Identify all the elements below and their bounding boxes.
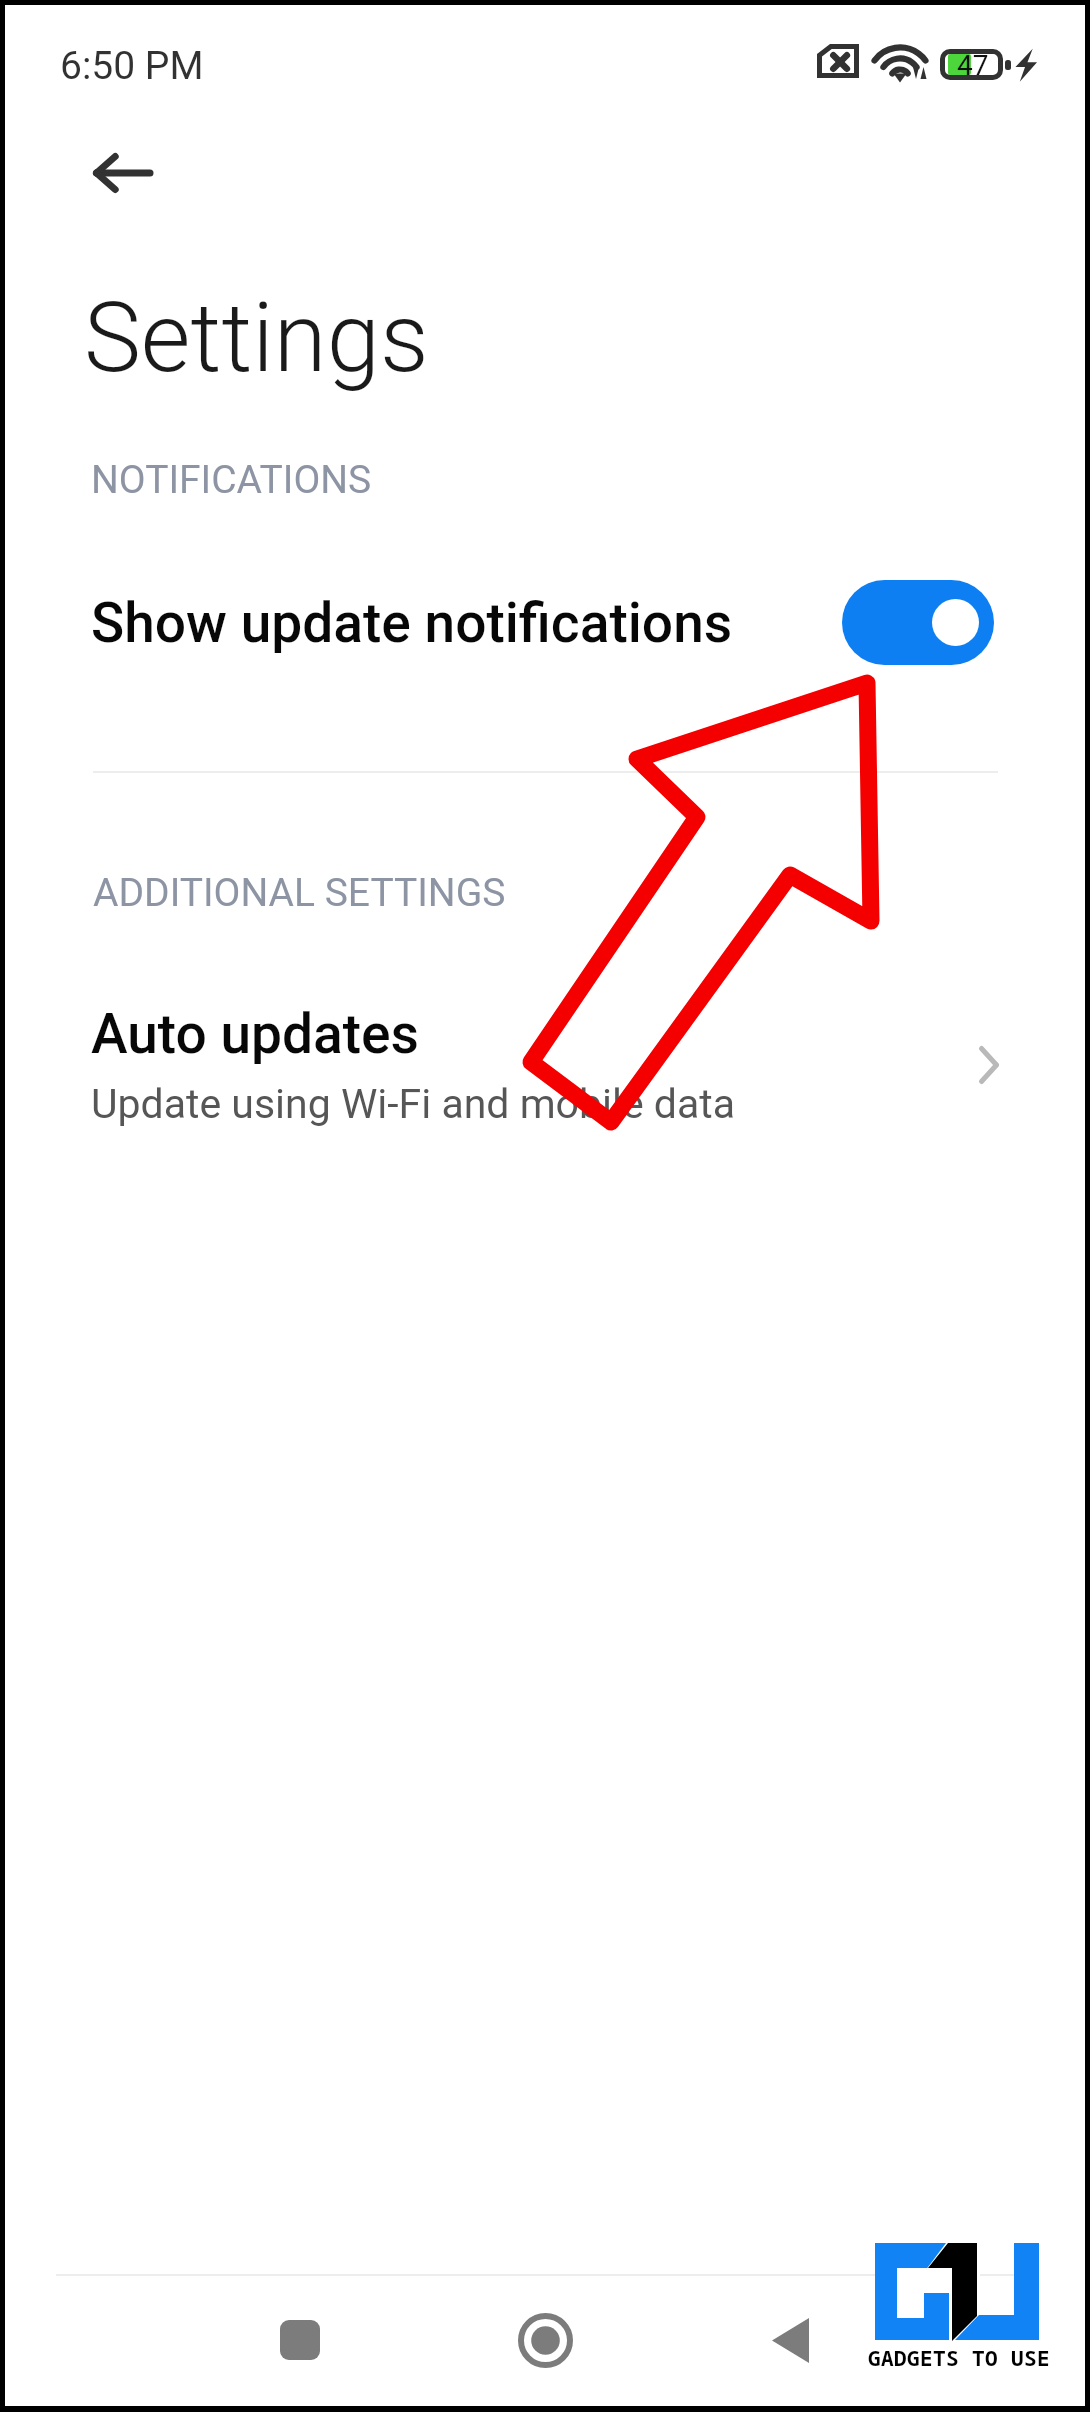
button[interactable]: Home <box>480 2275 610 2405</box>
staticText: Settings <box>84 282 429 395</box>
staticText: 47 <box>957 49 989 82</box>
staticText: Update using Wi-Fi and mobile data <box>91 1080 735 1128</box>
button[interactable]: Navigate up <box>67 117 179 229</box>
button[interactable]: Show update notifications switch, on <box>842 580 994 665</box>
staticText: ADDITIONAL SETTINGS <box>93 870 506 916</box>
button[interactable]: Auto updates <box>5 980 1085 1150</box>
button[interactable]: Open auto updates <box>959 1035 1019 1095</box>
staticText: NOTIFICATIONS <box>91 457 372 503</box>
button[interactable]: Recent apps <box>235 2275 365 2405</box>
button[interactable]: Show update notifications <box>5 545 1085 700</box>
staticText: Auto updates <box>91 1002 420 1066</box>
button[interactable]: Back <box>725 2275 855 2405</box>
staticText: GADGETS TO USE <box>868 2344 1050 2373</box>
staticText: Show update notifications <box>91 591 733 655</box>
staticText: 6:50 PM <box>60 43 204 89</box>
